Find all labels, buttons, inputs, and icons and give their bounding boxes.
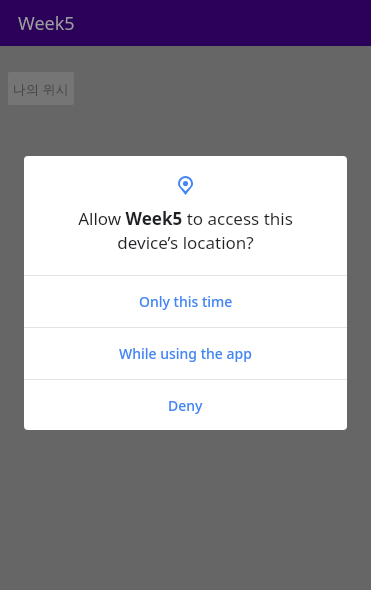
staticText: Week5 (18, 11, 75, 36)
button[interactable]: While using the app (24, 328, 347, 379)
staticText: Deny (168, 396, 203, 415)
other: Location (178, 176, 193, 195)
staticText: While using the app (119, 344, 252, 363)
staticText: Only this time (139, 292, 233, 311)
button[interactable]: 나의 위시 (8, 72, 74, 105)
staticText: 나의 위시 (13, 80, 69, 98)
button[interactable]: Deny (24, 380, 347, 430)
button[interactable]: Only this time (24, 276, 347, 327)
staticText: Allow Week5 to access this device’s loca… (46, 207, 325, 254)
